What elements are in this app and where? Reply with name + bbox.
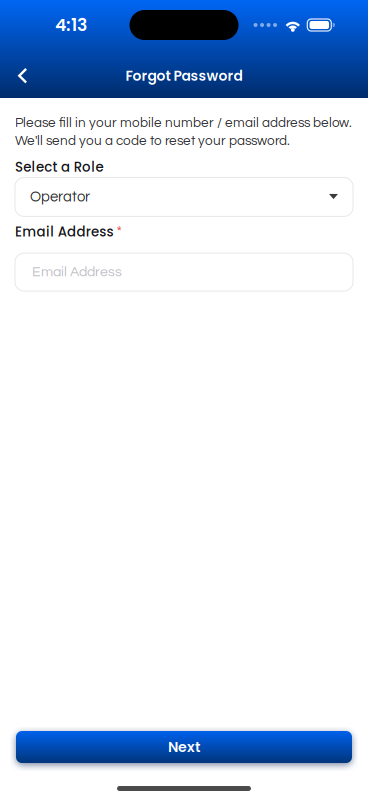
staticText: Email Address — [32, 265, 122, 279]
staticText: Email Address — [15, 222, 114, 241]
staticText: Please fill in your mobile number / emai… — [15, 116, 352, 130]
staticText: We'll send you a code to reset your pass… — [15, 134, 290, 148]
staticText: * — [117, 224, 122, 239]
staticText: Select a Role — [15, 158, 104, 176]
staticText: 4:13 — [55, 13, 87, 37]
button[interactable]: Back — [3, 59, 43, 93]
button[interactable]: Next — [16, 731, 352, 763]
button[interactable]: Email Address — [15, 253, 353, 291]
staticText: Next — [168, 737, 200, 757]
staticText: Operator — [30, 189, 90, 204]
staticText: Forgot Password — [125, 66, 242, 86]
button[interactable]: Operator — [15, 177, 353, 216]
